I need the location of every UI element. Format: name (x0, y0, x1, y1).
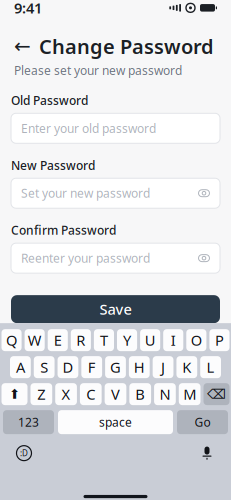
staticText: Q (6, 330, 17, 350)
staticText: Confirm Password (11, 222, 116, 238)
staticText: Please set your new password (14, 62, 182, 78)
staticText: ← (14, 35, 31, 57)
staticText: N (159, 384, 170, 404)
staticText: space (99, 414, 132, 430)
staticText: ⌫ (207, 387, 226, 402)
staticText: Change Password (39, 33, 214, 59)
staticText: ⬆ (9, 387, 20, 402)
staticText: C (86, 384, 95, 404)
button[interactable]: I (163, 329, 183, 351)
button[interactable]: Delete (203, 383, 229, 405)
staticText: Old Password (11, 92, 88, 108)
button[interactable]: O (186, 329, 206, 351)
button[interactable]: Y (117, 329, 137, 351)
button[interactable]: E (48, 329, 68, 351)
button[interactable]: Save (11, 295, 220, 323)
button[interactable]: B (129, 383, 151, 405)
button[interactable]: Dictation (197, 443, 217, 463)
staticText: 123 (18, 414, 39, 430)
staticText: K (182, 357, 191, 377)
staticText: J (161, 357, 165, 377)
staticText: V (111, 384, 120, 404)
staticText: Z (37, 384, 45, 404)
button[interactable]: Q (1, 329, 22, 351)
staticText: F (88, 357, 96, 377)
staticText: G (110, 357, 121, 377)
button[interactable]: space (58, 410, 173, 434)
staticText: S (40, 357, 48, 377)
button[interactable]: Set your new password (11, 178, 220, 208)
button[interactable]: X (55, 383, 77, 405)
button[interactable]: V (105, 383, 126, 405)
staticText: Enter your old password (21, 120, 156, 136)
button[interactable]: J (153, 356, 173, 378)
staticText: O (191, 330, 202, 350)
button[interactable]: R (71, 329, 91, 351)
staticText: New Password (11, 157, 95, 173)
staticText: Y (123, 330, 131, 350)
button[interactable]: P (209, 329, 229, 351)
button[interactable]: D (58, 356, 78, 378)
staticText: W (28, 330, 42, 350)
button[interactable]: C (80, 383, 102, 405)
staticText: X (62, 384, 71, 404)
button[interactable]: Z (30, 383, 52, 405)
button[interactable]: T (94, 329, 114, 351)
button[interactable]: G (105, 356, 126, 378)
staticText: Save (99, 299, 131, 319)
staticText: E (54, 330, 62, 350)
staticText: A (16, 357, 25, 377)
staticText: 9:41 (14, 0, 42, 18)
button[interactable]: W (25, 329, 45, 351)
button[interactable]: M (179, 383, 200, 405)
button[interactable]: Go (177, 410, 228, 434)
button[interactable]: K (176, 356, 197, 378)
staticText: H (134, 357, 145, 377)
staticText: R (76, 330, 85, 350)
staticText: I (171, 330, 176, 350)
staticText: T (100, 330, 108, 350)
button[interactable]: Shift (1, 383, 27, 405)
button[interactable]: U (140, 329, 160, 351)
button[interactable]: Emoji (14, 443, 34, 463)
staticText: :D (20, 448, 28, 458)
staticText: L (207, 357, 215, 377)
button[interactable]: N (154, 383, 176, 405)
staticText: U (145, 330, 156, 350)
button[interactable]: Enter your old password (11, 113, 220, 143)
button[interactable]: L (200, 356, 221, 378)
staticText: B (135, 384, 145, 404)
staticText: Reenter your password (21, 250, 150, 266)
button[interactable]: A (10, 356, 31, 378)
staticText: M (183, 384, 196, 404)
button[interactable]: 123 (3, 410, 54, 434)
staticText: D (62, 357, 73, 377)
button[interactable]: S (34, 356, 55, 378)
staticText: P (215, 330, 224, 350)
staticText: Set your new password (21, 185, 150, 201)
button[interactable]: Reenter your password (11, 243, 220, 273)
button[interactable]: Back (14, 33, 214, 59)
button[interactable]: F (81, 356, 102, 378)
staticText: Go (194, 414, 210, 430)
button[interactable]: H (129, 356, 150, 378)
